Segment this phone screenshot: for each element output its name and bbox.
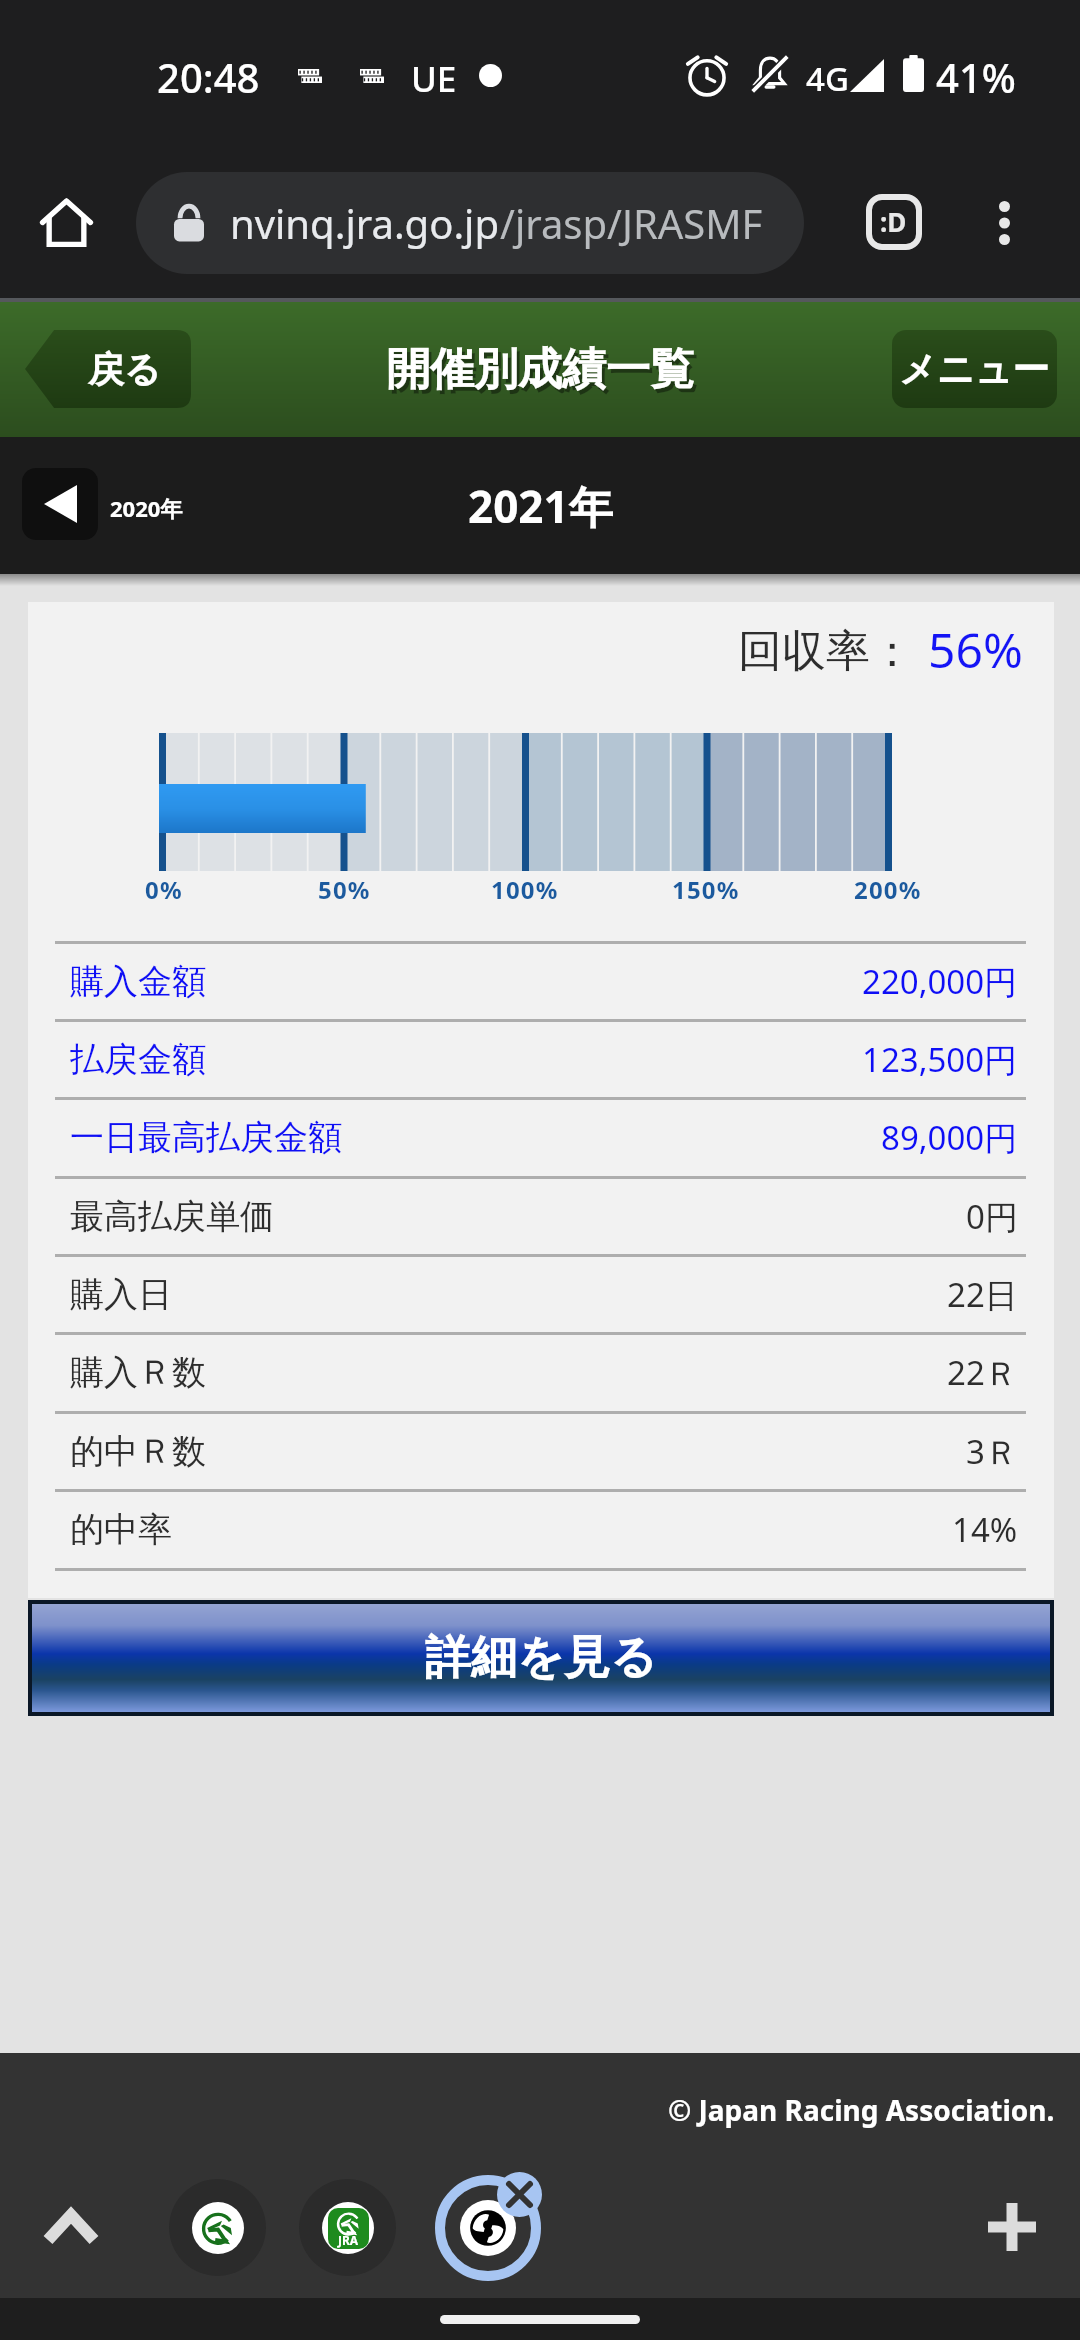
staticText: 購入金額 bbox=[70, 960, 206, 1003]
staticText: 41% bbox=[936, 50, 1016, 104]
staticText: :D bbox=[880, 204, 907, 239]
staticText: /jrasp/JRASMF bbox=[500, 196, 763, 250]
staticText: 購入日 bbox=[70, 1273, 172, 1316]
staticText: 4G bbox=[806, 56, 849, 101]
staticText: 最高払戻単価 bbox=[70, 1195, 274, 1238]
button[interactable]: Tabs bbox=[856, 184, 931, 259]
button[interactable]: 払戻金額 bbox=[28, 1019, 1054, 1097]
staticText: 200% bbox=[854, 873, 922, 906]
button[interactable]: JRA app bbox=[169, 2179, 266, 2276]
staticText: 2021年 bbox=[468, 476, 613, 536]
button[interactable]: More options bbox=[958, 177, 1050, 269]
staticText: 購入Ｒ数 bbox=[70, 1351, 206, 1394]
staticText: 50% bbox=[318, 873, 371, 906]
staticText: UE bbox=[411, 55, 457, 103]
button[interactable]: 詳細を見る bbox=[32, 1604, 1050, 1712]
button[interactable]: 的中Ｒ数 bbox=[28, 1411, 1054, 1489]
staticText: 回収率： bbox=[738, 624, 914, 679]
button[interactable]: Browser tab bbox=[429, 2169, 547, 2287]
staticText: 220,000円 bbox=[862, 959, 1018, 1004]
staticText: nvinq.jra.go.jp bbox=[230, 196, 500, 250]
staticText: 22Ｒ bbox=[947, 1350, 1018, 1395]
staticText: JRA bbox=[338, 2232, 359, 2248]
staticText: 22日 bbox=[947, 1272, 1018, 1317]
button[interactable]: Home bbox=[21, 177, 111, 267]
button[interactable]: 一日最高払戻金額 bbox=[28, 1097, 1054, 1175]
button[interactable]: nvinq.jra.go.jp bbox=[136, 172, 804, 274]
button[interactable]: 最高払戻単価 bbox=[28, 1176, 1054, 1254]
staticText: 20:48 bbox=[157, 50, 260, 104]
staticText: 56% bbox=[928, 617, 1023, 682]
button[interactable]: Expand bbox=[27, 2183, 115, 2271]
staticText: 100% bbox=[491, 873, 559, 906]
staticText: 戻る bbox=[88, 347, 161, 392]
staticText: メニュー bbox=[899, 346, 1050, 393]
staticText: 的中Ｒ数 bbox=[70, 1430, 206, 1473]
button[interactable]: メニュー bbox=[892, 330, 1057, 408]
staticText: 150% bbox=[672, 873, 740, 906]
button[interactable]: JRA site bbox=[299, 2179, 396, 2276]
staticText: 2020年 bbox=[110, 493, 183, 523]
staticText: 0% bbox=[145, 873, 183, 906]
button[interactable]: 戻る bbox=[25, 330, 191, 408]
button[interactable]: 購入金額 bbox=[28, 941, 1054, 1019]
staticText: 0円 bbox=[966, 1194, 1018, 1239]
staticText: 89,000円 bbox=[881, 1115, 1018, 1160]
button[interactable]: 購入日 bbox=[28, 1254, 1054, 1332]
button[interactable]: New tab bbox=[968, 2183, 1056, 2271]
staticText: © Japan Racing Association. bbox=[668, 2091, 1055, 2129]
staticText: 3Ｒ bbox=[966, 1429, 1018, 1474]
staticText: 一日最高払戻金額 bbox=[70, 1116, 342, 1159]
staticText: 123,500円 bbox=[862, 1037, 1018, 1082]
button[interactable]: 購入Ｒ数 bbox=[28, 1332, 1054, 1410]
staticText: 開催別成績一覧 bbox=[389, 346, 697, 401]
button[interactable]: Previous year bbox=[22, 468, 98, 540]
staticText: 払戻金額 bbox=[70, 1038, 206, 1081]
staticText: 開催別成績一覧 bbox=[386, 342, 694, 397]
staticText: 14% bbox=[952, 1507, 1018, 1552]
staticText: 詳細を見る bbox=[425, 1629, 658, 1687]
button[interactable]: 的中率 bbox=[28, 1489, 1054, 1567]
staticText: 的中率 bbox=[70, 1508, 172, 1551]
